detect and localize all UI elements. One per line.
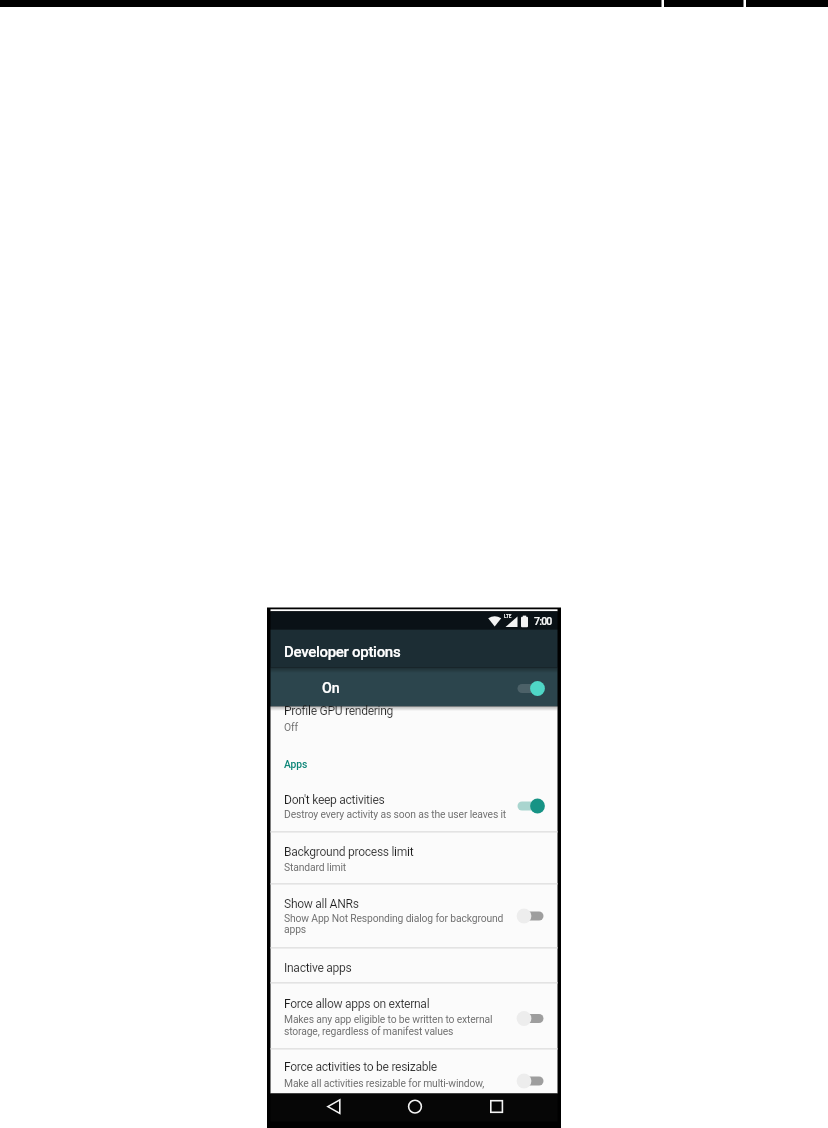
staticText: On	[322, 680, 340, 697]
staticText: Show App Not Responding dialog for backg…	[284, 912, 504, 924]
staticText: Inactive apps	[284, 961, 352, 975]
staticText: Developer options	[284, 643, 401, 661]
staticText: Background process limit	[284, 845, 414, 859]
staticText: Force allow apps on external	[284, 997, 430, 1011]
staticText: Profile GPU rendering	[284, 704, 394, 718]
staticText: 7:00	[534, 615, 552, 627]
staticText: Apps	[284, 758, 308, 770]
staticText: Make all activities resizable for multi-…	[284, 1077, 485, 1089]
staticText: Makes any app eligible to be written to …	[284, 1013, 493, 1025]
staticText: Destroy every activity as soon as the us…	[284, 808, 507, 820]
staticText: Don't keep activities	[284, 793, 385, 807]
staticText: Show all ANRs	[284, 897, 359, 911]
staticText: storage, regardless of manifest values	[284, 1025, 454, 1037]
staticText: Off	[284, 721, 298, 733]
staticText: apps	[284, 923, 306, 935]
staticText: Force activities to be resizable	[284, 1060, 437, 1074]
staticText: Standard limit	[284, 861, 347, 873]
staticText: LTE	[504, 614, 512, 619]
